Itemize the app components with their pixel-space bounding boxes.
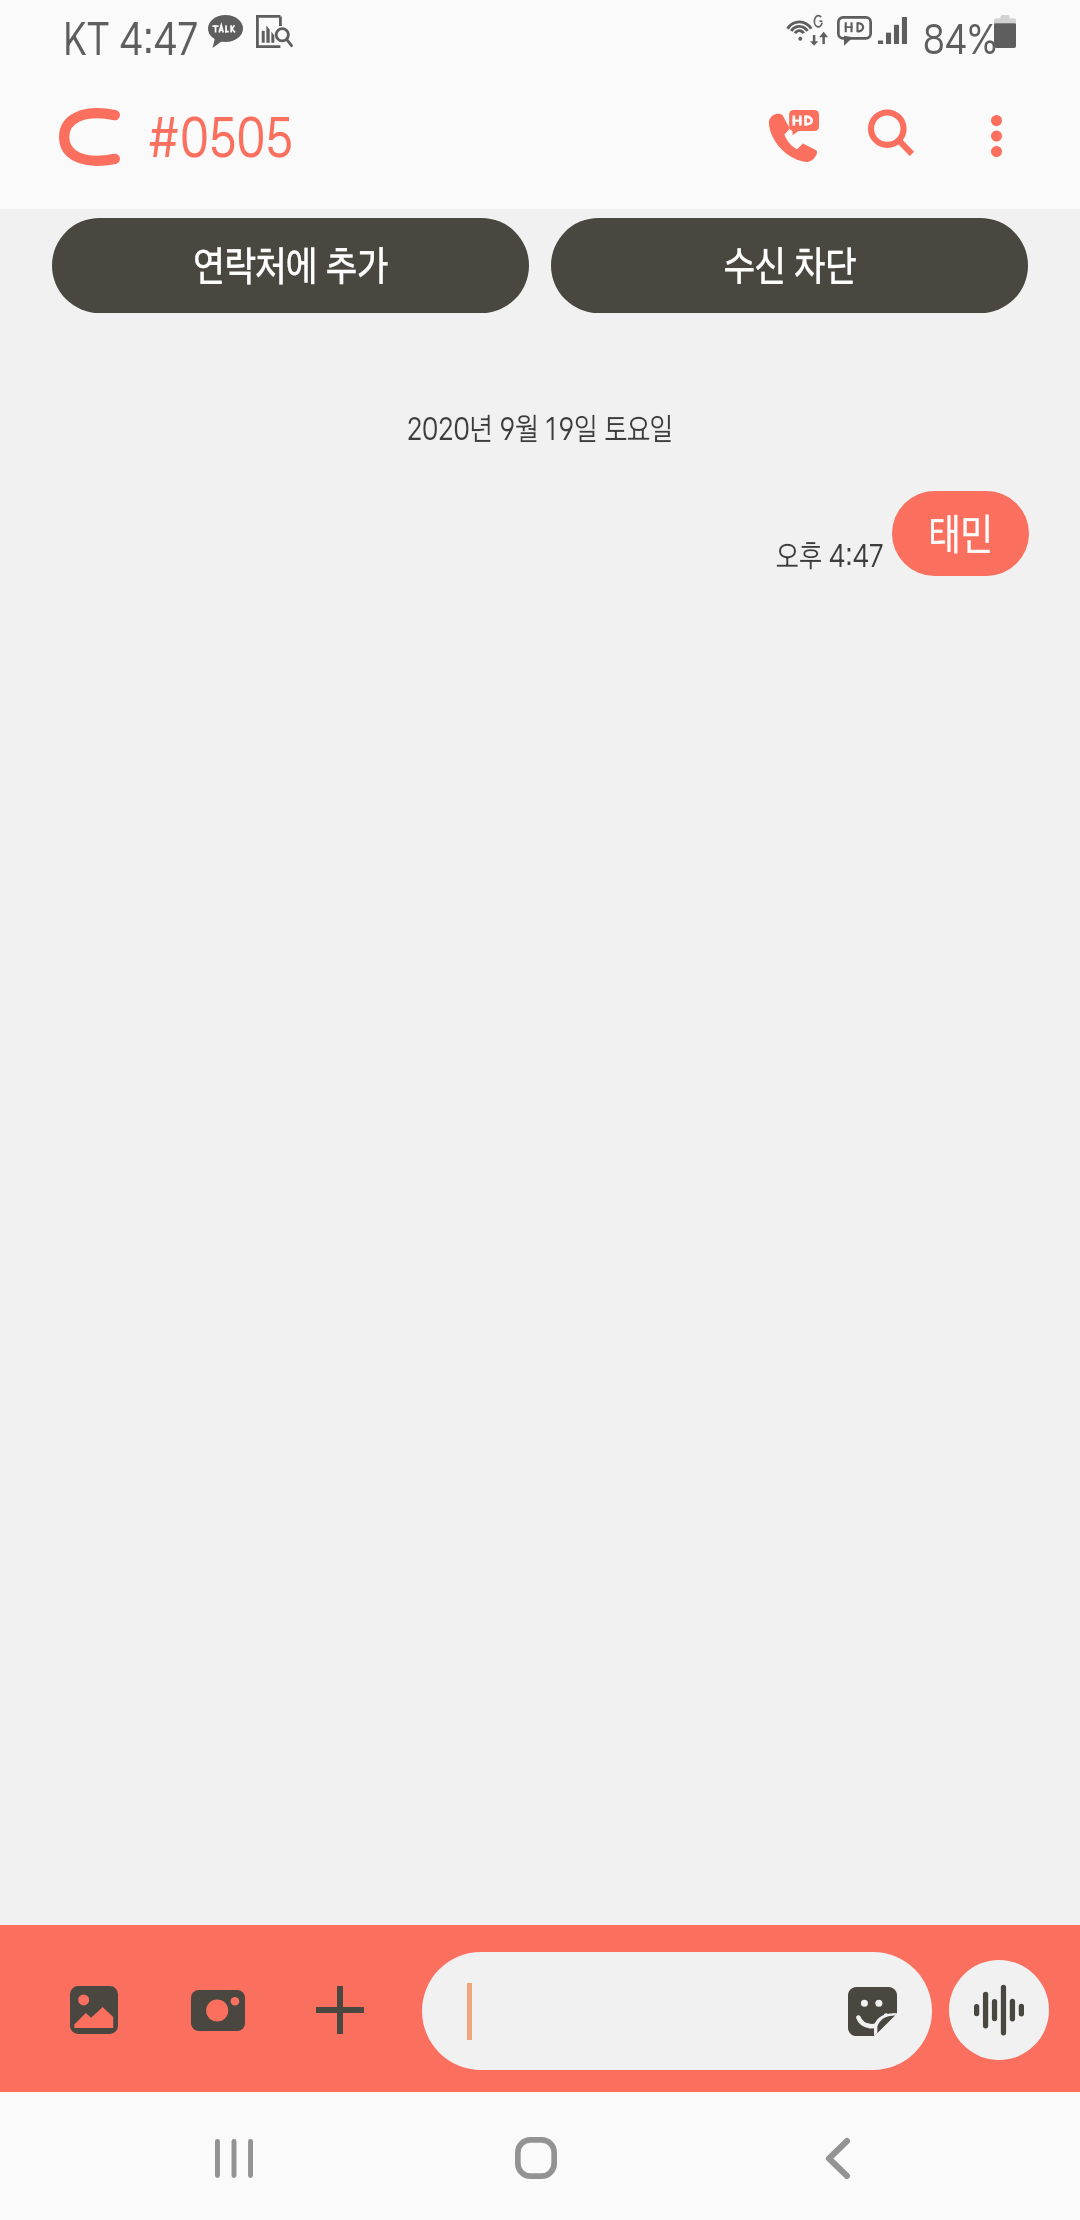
button[interactable]: HD Call xyxy=(739,82,847,190)
button[interactable]: Enter message xyxy=(422,1952,932,2070)
staticText: KT 4:47 xyxy=(63,11,198,66)
staticText: 태민 xyxy=(928,507,994,561)
staticText: #0505 xyxy=(147,104,294,171)
button[interactable]: Voice message xyxy=(949,1960,1049,2060)
button[interactable]: 수신 차단 xyxy=(551,218,1028,313)
button[interactable]: Recent apps xyxy=(186,2092,282,2188)
staticText: 수신 차단 xyxy=(724,240,856,291)
button[interactable]: More options xyxy=(942,82,1050,190)
button[interactable]: 연락처에 추가 xyxy=(52,218,529,313)
button[interactable]: Camera xyxy=(170,1962,266,2058)
staticText: 연락처에 추가 xyxy=(194,240,388,291)
staticText: 84% xyxy=(923,13,998,64)
staticText: 오후 4:47 xyxy=(776,537,883,575)
button[interactable]: Search xyxy=(837,82,945,190)
button[interactable]: 태민 xyxy=(892,491,1029,576)
button[interactable]: Stickers xyxy=(834,1973,910,2049)
staticText: 2020년 9월 19일 토요일 xyxy=(86,410,994,448)
button[interactable]: Home xyxy=(488,2092,584,2188)
button[interactable]: Back xyxy=(42,94,136,188)
button[interactable]: Back xyxy=(790,2092,886,2188)
button[interactable]: Gallery xyxy=(46,1962,142,2058)
button[interactable]: Add attachment xyxy=(292,1962,388,2058)
